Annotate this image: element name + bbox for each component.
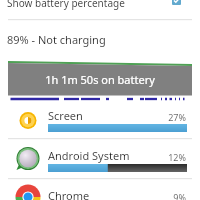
- button[interactable]: Show battery percentage: [0, 0, 200, 19]
- button[interactable]: [0, 138, 200, 178]
- button[interactable]: [0, 178, 200, 200]
- staticText: 12%: [140, 151, 186, 163]
- staticText: 9%: [140, 191, 186, 200]
- staticText: Android System: [48, 148, 130, 163]
- button[interactable]: [0, 98, 200, 138]
- other: Show battery percentage checkbox: [172, 0, 181, 5]
- staticText: Chrome: [48, 188, 90, 200]
- staticText: 1h 1m 50s on battery: [0, 72, 200, 87]
- staticText: Screen: [48, 108, 83, 123]
- staticText: 89% - Not charging: [7, 32, 106, 47]
- staticText: 27%: [140, 111, 186, 123]
- staticText: Show battery percentage: [7, 0, 125, 10]
